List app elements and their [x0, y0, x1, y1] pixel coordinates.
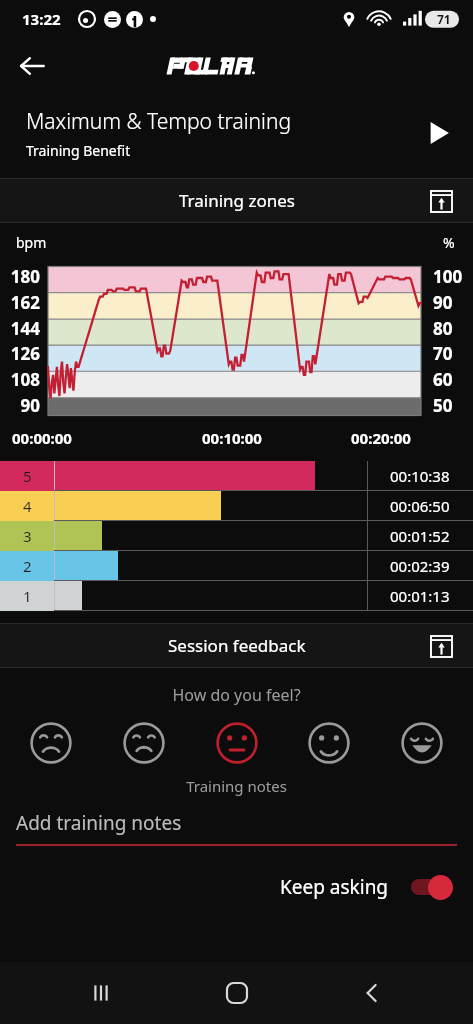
staticText: 00:01:13	[390, 586, 450, 606]
staticText: 180	[0, 265, 40, 288]
button[interactable]: Feeling 3	[212, 718, 262, 768]
button[interactable]: 5	[0, 461, 473, 491]
staticText: 00:06:50	[390, 496, 450, 516]
staticText: 5	[23, 466, 32, 486]
staticText: 3	[23, 526, 32, 546]
button[interactable]: Feeling 2	[119, 718, 169, 768]
staticText: Training zones	[179, 189, 295, 212]
staticText: %	[443, 233, 455, 252]
staticText: How do you feel?	[0, 684, 473, 706]
button[interactable]: 3	[0, 521, 473, 551]
button[interactable]: Recents	[78, 970, 124, 1016]
staticText: Session feedback	[168, 634, 306, 657]
button[interactable]: Feeling 1	[26, 718, 76, 768]
button[interactable]: Export Training zones	[421, 181, 461, 221]
staticText: 50	[433, 394, 473, 417]
staticText: 90	[433, 291, 473, 314]
staticText: 108	[0, 368, 40, 391]
button[interactable]: Feeling 5	[397, 718, 447, 768]
staticText: 00:02:39	[390, 556, 450, 576]
button[interactable]: Back	[349, 970, 395, 1016]
staticText: 100	[433, 265, 473, 288]
staticText: 13:22	[22, 9, 61, 29]
staticText: 00:20:00	[351, 428, 411, 448]
staticText: 00:10:00	[202, 428, 262, 448]
staticText: 126	[0, 342, 40, 365]
staticText: Training notes	[0, 776, 473, 796]
staticText: 162	[0, 291, 40, 314]
staticText: 00:00:00	[12, 428, 72, 448]
staticText: 60	[433, 368, 473, 391]
staticText: Training Benefit	[26, 141, 131, 160]
staticText: 80	[433, 317, 473, 340]
button[interactable]: Keep asking	[0, 874, 455, 900]
button[interactable]: 4	[0, 491, 473, 521]
staticText: 71	[437, 11, 451, 27]
button[interactable]: Back	[8, 42, 56, 90]
button[interactable]: Add training notes	[16, 810, 457, 836]
button[interactable]: 2	[0, 551, 473, 581]
staticText: 2	[23, 556, 32, 576]
button[interactable]: Home	[214, 970, 260, 1016]
staticText: 4	[23, 496, 32, 516]
staticText: 1	[23, 586, 32, 606]
button[interactable]: 1	[0, 581, 473, 611]
staticText: Maximum & Tempo training	[26, 107, 291, 136]
staticText: 90	[0, 394, 40, 417]
button[interactable]: Play	[415, 109, 463, 157]
staticText: 00:10:38	[390, 466, 450, 486]
staticText: 00:01:52	[390, 526, 450, 546]
button[interactable]: Feeling 4	[304, 718, 354, 768]
button[interactable]: Export Session feedback	[421, 626, 461, 666]
staticText: 70	[433, 342, 473, 365]
staticText: bpm	[16, 233, 47, 252]
staticText: Keep asking	[280, 874, 389, 900]
staticText: 144	[0, 317, 40, 340]
